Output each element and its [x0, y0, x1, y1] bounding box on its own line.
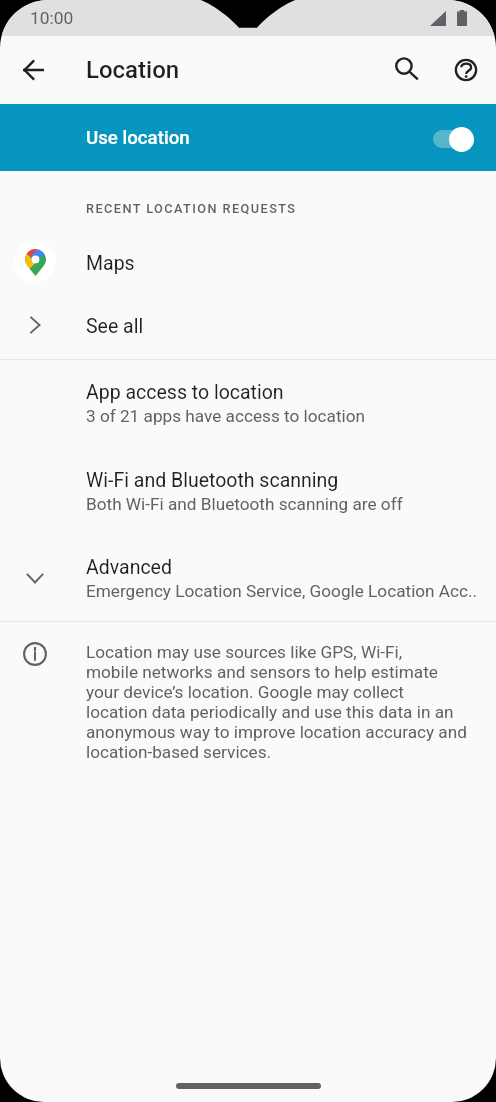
staticText: RECENT LOCATION REQUESTS: [86, 201, 297, 216]
staticText: Advanced: [86, 556, 172, 579]
staticText: Both Wi-Fi and Bluetooth scanning are of…: [86, 494, 403, 514]
button[interactable]: Wi-Fi and Bluetooth scanning: [0, 453, 496, 531]
button[interactable]: Help: [442, 46, 490, 94]
staticText: Wi-Fi and Bluetooth scanning: [86, 469, 339, 492]
button[interactable]: App access to location: [0, 365, 496, 443]
staticText: See all: [86, 315, 144, 338]
button[interactable]: Search: [382, 44, 430, 92]
button[interactable]: See all: [0, 298, 496, 352]
staticText: 10:00: [30, 8, 74, 28]
button[interactable]: Maps: [0, 235, 496, 289]
staticText: Maps: [86, 252, 135, 275]
button[interactable]: Advanced: [0, 540, 496, 618]
staticText: Use location: [86, 127, 190, 149]
staticText: Location: [86, 56, 180, 84]
staticText: App access to location: [86, 381, 284, 404]
staticText: Location may use sources like GPS, Wi-Fi…: [86, 642, 486, 762]
button[interactable]: Navigate up: [9, 46, 57, 94]
staticText: 3 of 21 apps have access to location: [86, 406, 366, 426]
button[interactable]: Use location: [0, 104, 496, 171]
staticText: Emergency Location Service, Google Locat…: [86, 581, 478, 601]
